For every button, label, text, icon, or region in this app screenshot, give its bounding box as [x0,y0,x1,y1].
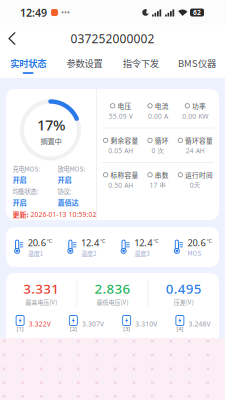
staticText: 2026-01-13 10:59:02 [30,210,96,219]
staticText: 0.00 A [148,112,168,121]
staticText: 最低电压(V) [96,297,128,306]
staticText: 62 [193,8,201,17]
staticText: 放电MOS: [57,164,85,173]
staticText: MOS [187,249,201,258]
staticText: 温度2 [81,249,96,258]
staticText: 037252000002 [70,30,154,46]
staticText: °C [206,237,211,244]
staticText: 压差(V) [174,297,194,306]
staticText: 协议: [57,187,71,196]
staticText: 循环容量 [185,135,213,145]
staticText: 0.495 [166,280,202,297]
staticText: 3.307V [82,320,104,328]
staticText: 充电MOS: [12,164,40,173]
staticText: 20.6 [187,236,205,249]
staticText: 剩余容量 [110,135,138,145]
staticText: 温度3 [134,249,149,258]
staticText: 更新: [12,209,28,219]
staticText: 3.331 [23,280,59,297]
staticText: ••• [61,7,70,18]
staticText: 最高电压(V) [25,297,57,306]
button[interactable]: Back [0,25,24,52]
staticText: 温度1 [28,249,43,258]
staticText: 实时状态 [10,56,46,70]
staticText: 3.248V [188,320,210,328]
staticText: 12.4 [81,236,99,249]
button[interactable]: 参数设置 [56,52,113,78]
staticText: 开启 [12,197,26,207]
staticText: 标称容量 [110,170,138,180]
staticText: 3.310V [135,320,157,328]
staticText: 17 串 [149,181,166,190]
staticText: 开启 [57,174,71,185]
button[interactable]: BMS仪器 [169,52,225,78]
staticText: 55.09 V [109,112,133,121]
staticText: 12.4 [134,236,152,249]
button[interactable]: 实时状态 [0,52,56,78]
staticText: 2.836 [94,280,130,297]
staticText: 循环 [155,135,169,145]
staticText: 0天 [190,181,201,190]
staticText: 均衡状态: [12,187,38,196]
staticText: 0.50 AH [108,181,133,190]
staticText: 20.6 [28,236,46,249]
staticText: °C [100,237,105,244]
staticText: 运行时间 [185,170,213,180]
staticText: 0.05 AH [108,146,133,155]
staticText: 12:49 [20,5,47,20]
staticText: [3] [123,325,130,333]
staticText: 24 AH [186,146,205,155]
staticText: 开启 [12,174,26,185]
staticText: °C [153,237,158,244]
staticText: 搁置中 [40,135,61,146]
staticText: [1] [17,325,24,333]
staticText: 指令下发 [123,56,159,70]
staticText: 电压 [117,101,131,111]
staticText: 17% [37,115,65,134]
staticText: 串数 [155,170,169,180]
button[interactable]: 指令下发 [112,52,169,78]
staticText: 0 次 [151,146,164,155]
staticText: °C [47,237,52,244]
staticText: 3.322V [29,320,51,328]
staticText: 电流 [155,101,169,111]
staticText: [4] [176,325,183,333]
staticText: 功率 [192,101,206,111]
staticText: 0.00 KW [182,112,208,121]
staticText: 嘉佰达 [57,197,78,207]
staticText: [2] [70,325,77,333]
staticText: 参数设置 [66,56,102,70]
staticText: BMS仪器 [178,56,216,70]
